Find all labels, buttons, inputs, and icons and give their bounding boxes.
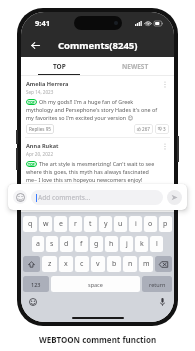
staticText: me~ I love this sm hopeyou newcomers enj…	[26, 176, 143, 183]
button[interactable]: v	[91, 256, 105, 272]
button[interactable]: More options	[160, 142, 169, 151]
staticText: c	[80, 259, 84, 269]
button[interactable]: Emoji	[13, 190, 27, 204]
button[interactable]: d	[60, 236, 73, 252]
staticText: y	[104, 219, 108, 229]
staticText: where this goes, this myth has always fa…	[26, 168, 149, 175]
button[interactable]: n	[123, 256, 137, 272]
button[interactable]: Replies 95	[26, 124, 54, 134]
staticText: l	[156, 239, 158, 249]
button[interactable]: g	[90, 236, 103, 252]
staticText: v	[96, 259, 100, 269]
button[interactable]: z	[42, 256, 57, 272]
button[interactable]: a	[32, 236, 44, 252]
button[interactable]: Add comments...	[31, 190, 163, 205]
button[interactable]: More options	[160, 80, 169, 89]
staticText: n	[128, 259, 133, 269]
staticText: s	[50, 239, 54, 249]
staticText: WEBTOON comment function	[0, 334, 195, 345]
button[interactable]: TOP	[21, 57, 97, 76]
button[interactable]: m	[139, 256, 153, 272]
button[interactable]: Shift	[23, 256, 40, 272]
staticText: w	[43, 219, 49, 229]
staticText: my favorites so I'm excited your version…	[26, 114, 134, 121]
staticText: Oh my gods!! I'm a huge fan of Greek	[39, 98, 134, 105]
staticText: 267	[142, 126, 150, 132]
button[interactable]: y	[99, 216, 112, 232]
button[interactable]: k	[135, 236, 148, 252]
staticText: z	[48, 259, 52, 269]
staticText: Comments(8245)	[58, 39, 138, 52]
staticText: NEWEST	[122, 62, 149, 71]
button[interactable]: p	[159, 216, 172, 232]
staticText: k	[140, 239, 144, 249]
staticText: g	[94, 239, 99, 249]
button[interactable]: NEWEST	[97, 57, 174, 76]
button[interactable]: b	[107, 256, 121, 272]
button[interactable]: 3	[155, 124, 169, 134]
button[interactable]: s	[46, 236, 58, 252]
staticText: The art style is mesmerizing! Can't wait…	[39, 160, 155, 167]
button[interactable]: h	[105, 236, 118, 252]
button[interactable]: 123	[23, 276, 49, 292]
button[interactable]: Send	[167, 190, 182, 205]
staticText: Replies 95	[29, 126, 51, 132]
button[interactable]: o	[144, 216, 157, 232]
button[interactable]: x	[59, 256, 73, 272]
staticText: r	[74, 219, 77, 229]
staticText: 9:41	[35, 18, 50, 28]
staticText: space	[88, 281, 103, 288]
staticText: b	[112, 259, 117, 269]
button[interactable]: w	[39, 216, 52, 232]
staticText: Sep 14, 2023	[26, 89, 54, 95]
staticText: q	[28, 219, 33, 229]
button[interactable]: t	[84, 216, 97, 232]
button[interactable]: Emoji keyboard	[27, 296, 39, 308]
staticText: f	[80, 239, 83, 249]
button[interactable]: c	[75, 256, 89, 272]
staticText: return	[149, 281, 166, 288]
staticText: x	[64, 259, 68, 269]
button[interactable]: f	[75, 236, 88, 252]
button[interactable]: u	[114, 216, 127, 232]
button[interactable]: i	[129, 216, 142, 232]
button[interactable]: return	[142, 276, 172, 292]
staticText: o	[148, 219, 153, 229]
staticText: d	[64, 239, 69, 249]
staticText: t	[89, 219, 92, 229]
staticText: mythology and Persephone's story Hades i…	[26, 106, 158, 113]
staticText: 123	[31, 281, 41, 288]
staticText: Amelia Herrera	[26, 80, 69, 88]
staticText: TOP	[28, 100, 35, 105]
staticText: a	[36, 239, 40, 249]
button[interactable]: Back	[26, 36, 44, 54]
button[interactable]: e	[54, 216, 67, 232]
button[interactable]: r	[69, 216, 82, 232]
staticText: e	[59, 219, 63, 229]
button[interactable]: j	[120, 236, 133, 252]
staticText: m	[143, 259, 150, 269]
button[interactable]: Dictation	[156, 296, 168, 308]
staticText: i	[135, 219, 137, 229]
staticText: Add comments...	[38, 193, 91, 202]
staticText: h	[109, 239, 114, 249]
button[interactable]: 267	[134, 124, 153, 134]
staticText: Anna Rukat	[26, 142, 59, 150]
staticText: 3	[163, 126, 166, 132]
button[interactable]: Backspace	[155, 256, 172, 272]
staticText: j	[126, 239, 128, 249]
staticText: TOP	[53, 62, 66, 71]
button[interactable]: l	[150, 236, 163, 252]
staticText: u	[118, 219, 123, 229]
button[interactable]: space	[51, 276, 140, 292]
button[interactable]: q	[23, 216, 37, 232]
staticText: Apr 20, 2022	[26, 151, 54, 157]
staticText: p	[163, 219, 168, 229]
staticText: TOP	[28, 162, 35, 167]
